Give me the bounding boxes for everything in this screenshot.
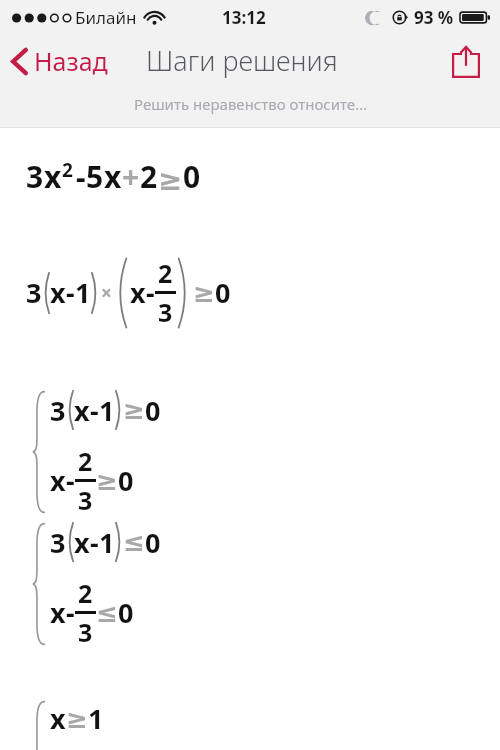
staticText: -	[66, 462, 75, 499]
staticText: x	[50, 594, 66, 631]
staticText: x	[74, 524, 90, 561]
staticText: ≥	[158, 163, 183, 197]
staticText: 0	[118, 594, 134, 631]
staticText: x	[50, 274, 66, 311]
staticText: -	[66, 594, 75, 631]
staticText: 2	[62, 157, 73, 183]
staticText: 0	[118, 462, 134, 499]
staticText: -	[90, 392, 99, 429]
staticText: ≥	[96, 466, 118, 496]
staticText: x	[44, 156, 62, 197]
staticText: x	[50, 700, 66, 737]
staticText: 2	[158, 256, 173, 290]
staticText: Шаги решения	[146, 42, 338, 79]
staticText: 1	[99, 392, 115, 429]
staticText: ≥	[66, 704, 88, 734]
staticText: x	[50, 462, 66, 499]
staticText: 3	[50, 524, 66, 561]
staticText: 2	[78, 444, 93, 478]
staticText: 0	[183, 156, 201, 197]
staticText: ≤	[96, 598, 118, 628]
button[interactable]: Назад	[8, 38, 112, 84]
staticText: 3	[78, 483, 93, 517]
staticText: -	[90, 524, 99, 561]
staticText: 93 %	[414, 6, 454, 29]
staticText: Решить неравенство относите…	[134, 94, 367, 114]
button[interactable]: Share	[446, 40, 486, 84]
staticText: -	[146, 274, 155, 311]
staticText: ≥	[193, 278, 215, 308]
staticText: 13:12	[222, 6, 266, 29]
staticText: Назад	[34, 44, 108, 78]
staticText: +	[122, 156, 140, 197]
staticText: -	[66, 274, 75, 311]
staticText: 0	[145, 392, 161, 429]
staticText: 0	[145, 524, 161, 561]
staticText: 1	[75, 274, 91, 311]
staticText: 3	[158, 295, 173, 329]
staticText: x	[104, 156, 122, 197]
staticText: x	[74, 392, 90, 429]
staticText: 2	[78, 576, 93, 610]
staticText: 1	[88, 700, 104, 737]
staticText: 1	[99, 524, 115, 561]
staticText: 3	[26, 156, 44, 197]
staticText: -	[76, 156, 86, 197]
staticText: 2	[140, 156, 158, 197]
staticText: 0	[215, 274, 231, 311]
staticText: ≤	[123, 527, 145, 557]
staticText: x	[130, 274, 146, 311]
staticText: ≥	[123, 395, 145, 425]
staticText: 3	[78, 615, 93, 649]
staticText: ×	[101, 280, 112, 306]
staticText: 5	[86, 156, 104, 197]
staticText: Билайн	[75, 6, 137, 29]
staticText: 3	[50, 392, 66, 429]
staticText: 3	[26, 274, 42, 311]
